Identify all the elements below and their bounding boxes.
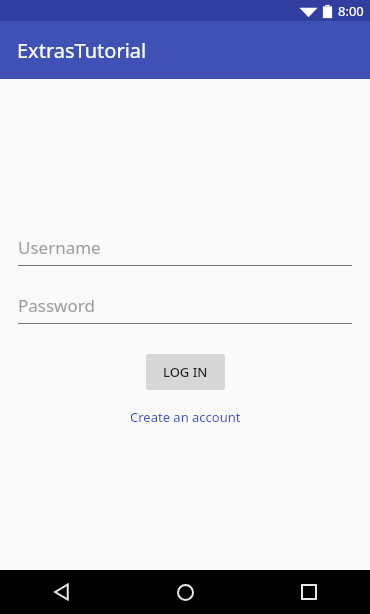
staticText: ExtrasTutorial xyxy=(17,37,147,64)
button[interactable]: Home xyxy=(124,570,247,614)
staticText: Create an account xyxy=(130,408,241,426)
button[interactable]: Back xyxy=(0,570,124,614)
button[interactable]: Username xyxy=(18,236,352,266)
button[interactable]: Password xyxy=(18,294,352,324)
button[interactable]: Recent apps xyxy=(247,570,370,614)
staticText: LOG IN xyxy=(163,363,208,381)
staticText: Username xyxy=(18,236,101,259)
staticText: Password xyxy=(18,294,95,317)
button[interactable]: LOG IN xyxy=(146,354,225,390)
staticText: 8:00 xyxy=(338,2,364,20)
button[interactable]: Create an account xyxy=(122,405,249,429)
